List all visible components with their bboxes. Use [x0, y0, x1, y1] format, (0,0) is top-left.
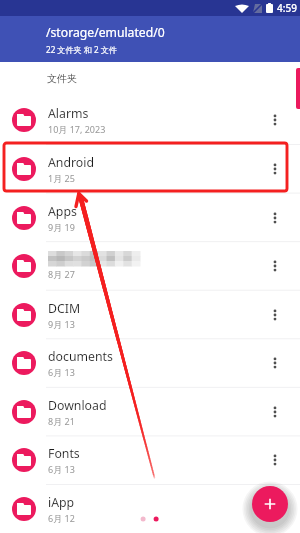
- staticText: 8月 27: [48, 268, 75, 280]
- button[interactable]: documents: [0, 338, 300, 387]
- button[interactable]: More options: [260, 445, 290, 475]
- button[interactable]: More options: [260, 348, 290, 378]
- button[interactable]: More options: [260, 251, 290, 281]
- staticText: 9月 19: [48, 221, 75, 233]
- staticText: DCIM: [48, 300, 81, 317]
- staticText: Apps: [48, 203, 77, 220]
- button[interactable]: More options: [260, 494, 290, 524]
- button[interactable]: More options: [260, 203, 290, 233]
- button[interactable]: Android: [0, 144, 300, 193]
- button[interactable]: Scroll handle: [296, 68, 300, 109]
- button[interactable]: Download: [0, 387, 300, 436]
- button[interactable]: Apps: [0, 193, 300, 242]
- staticText: 6月 12: [48, 512, 75, 524]
- staticText: 8月 21: [48, 415, 75, 427]
- staticText: iApp: [48, 494, 75, 511]
- staticText: Fonts: [48, 445, 80, 462]
- button[interactable]: Alarms: [0, 95, 300, 144]
- staticText: documents: [48, 348, 113, 365]
- staticText: 文件夹: [47, 72, 77, 85]
- staticText: Download: [48, 397, 107, 414]
- staticText: Android: [48, 154, 95, 171]
- staticText: 22 文件夹 和 2 文件: [46, 44, 117, 55]
- staticText: 6月 13: [48, 366, 75, 378]
- button[interactable]: More options: [260, 397, 290, 427]
- button[interactable]: DCIM: [0, 290, 300, 339]
- button[interactable]: More options: [260, 105, 290, 135]
- button[interactable]: iApp: [0, 484, 300, 533]
- button[interactable]: More options: [260, 154, 290, 184]
- button[interactable]: Add: [252, 486, 288, 522]
- staticText: 6月 13: [48, 463, 75, 475]
- staticText: /storage/emulated/0: [46, 24, 165, 41]
- staticText: 9月 13: [48, 318, 75, 330]
- button[interactable]: More options: [260, 300, 290, 330]
- button[interactable]: 8月 27: [0, 241, 300, 290]
- button[interactable]: Fonts: [0, 435, 300, 484]
- staticText: 10月 17, 2023: [48, 123, 106, 135]
- staticText: 1月 25: [48, 172, 75, 184]
- staticText: 4:59: [277, 1, 297, 15]
- staticText: Alarms: [48, 105, 89, 122]
